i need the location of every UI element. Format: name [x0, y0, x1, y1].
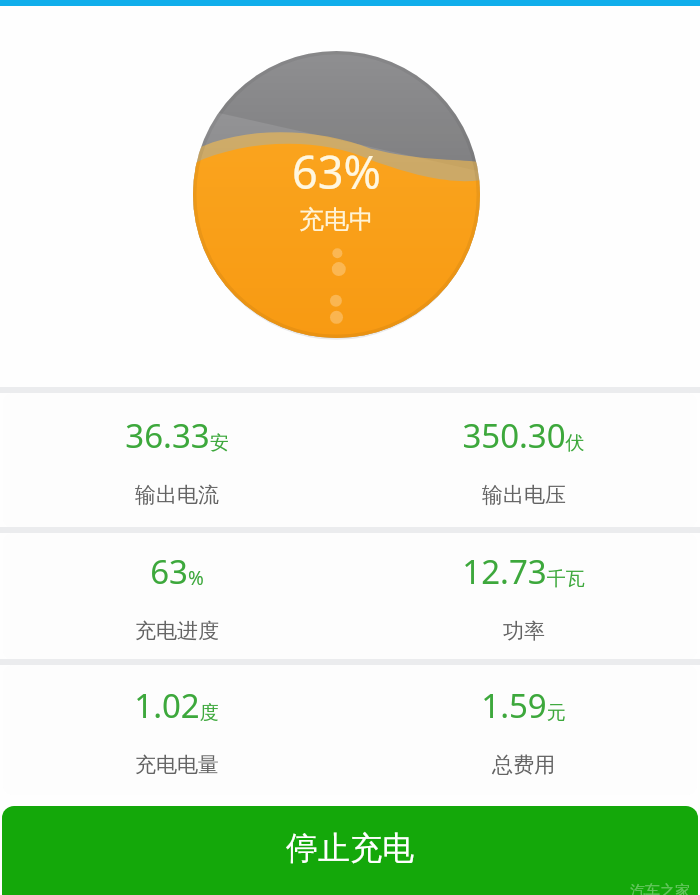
button[interactable]: 36.33安 — [3, 393, 350, 528]
staticText: 350.30伏 — [462, 413, 585, 458]
staticText: 63% — [292, 141, 381, 202]
button[interactable]: 350.30伏 — [350, 393, 697, 528]
staticText: 充电进度 — [135, 618, 219, 644]
staticText: 充电电量 — [135, 752, 219, 778]
staticText: 63% — [150, 549, 204, 594]
staticText: 总费用 — [492, 752, 555, 778]
staticText: 1.59元 — [481, 683, 566, 728]
staticText: 12.73千瓦 — [462, 549, 585, 594]
staticText: 输出电压 — [482, 482, 566, 508]
staticText: 充电中 — [299, 204, 374, 235]
staticText: 36.33安 — [125, 413, 229, 458]
staticText: 1.02度 — [134, 683, 219, 728]
button[interactable]: 停止充电 — [2, 806, 698, 895]
staticText: 功率 — [503, 618, 545, 644]
button[interactable]: 1.02度 — [3, 665, 350, 795]
staticText: 汽车之家 — [630, 882, 690, 895]
button[interactable]: 63% — [3, 533, 350, 660]
staticText: 输出电流 — [135, 482, 219, 508]
button[interactable]: 12.73千瓦 — [350, 533, 697, 660]
button[interactable]: 1.59元 — [350, 665, 697, 795]
staticText: 停止充电 — [286, 828, 414, 868]
